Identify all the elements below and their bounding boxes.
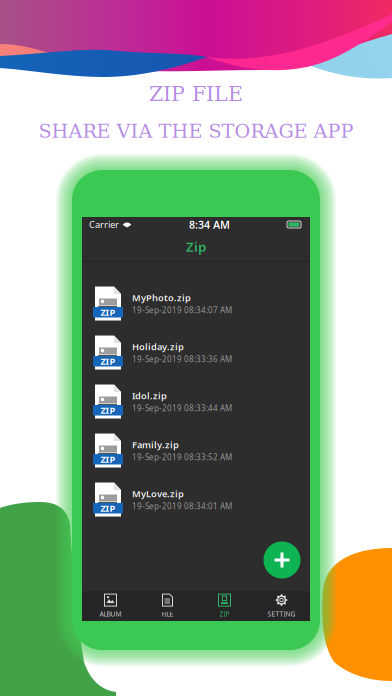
staticText: Zip (186, 238, 206, 255)
staticText: Carrier (89, 218, 119, 231)
staticText: 19-Sep-2019 08:33:44 AM (132, 403, 232, 413)
staticText: ALBUM (99, 610, 121, 618)
button[interactable]: ZIP (82, 279, 310, 328)
button[interactable]: ALBUM (82, 591, 139, 621)
button[interactable]: Add (263, 541, 300, 578)
button[interactable]: SETTING (253, 591, 310, 621)
staticText: ZIP (100, 306, 115, 318)
staticText: FILE (161, 610, 173, 618)
staticText: Idol.zip (132, 389, 167, 402)
button[interactable]: FILE (139, 591, 196, 621)
button[interactable]: ZIP (82, 475, 310, 524)
staticText: ZIP (100, 502, 115, 514)
staticText: ZIP (100, 355, 115, 367)
staticText: 19-Sep-2019 08:33:36 AM (132, 354, 232, 364)
staticText: ZIP (100, 453, 115, 465)
staticText: 8:34 AM (189, 217, 230, 232)
staticText: 19-Sep-2019 08:33:52 AM (132, 452, 232, 462)
button[interactable]: ZIP (196, 591, 253, 621)
staticText: MyPhoto.zip (132, 291, 191, 304)
staticText: ZIP (100, 404, 115, 416)
button[interactable]: ZIP (82, 328, 310, 377)
staticText: Family.zip (132, 438, 179, 451)
staticText: SHARE VIA THE STORAGE APP (38, 120, 353, 142)
staticText: 19-Sep-2019 08:34:07 AM (132, 305, 232, 315)
staticText: MyLove.zip (132, 487, 184, 500)
staticText: Holiday.zip (132, 340, 184, 353)
staticText: ZIP FILE (149, 82, 243, 106)
button[interactable]: ZIP (82, 426, 310, 475)
staticText: 19-Sep-2019 08:34:01 AM (132, 501, 232, 511)
button[interactable]: ZIP (82, 377, 310, 426)
staticText: ZIP (219, 610, 229, 618)
staticText: SETTING (267, 610, 295, 618)
